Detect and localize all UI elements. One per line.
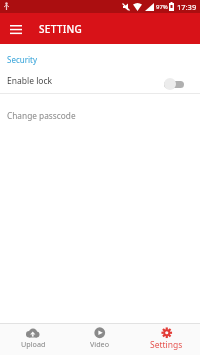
staticText: Upload	[21, 339, 46, 349]
button[interactable]	[0, 13, 31, 44]
staticText: Change passcode	[7, 110, 76, 121]
staticText: 17:39	[177, 2, 197, 12]
button[interactable]	[164, 78, 184, 90]
staticText: Enable lock	[7, 75, 53, 87]
staticText: 97%	[156, 3, 168, 11]
staticText: Settings	[150, 339, 183, 351]
button[interactable]: Settings	[133, 324, 200, 355]
button[interactable]: Video	[66, 324, 133, 355]
staticText: Security	[7, 54, 38, 65]
button[interactable]: Enable lock	[0, 65, 200, 93]
button[interactable]: Change passcode	[0, 94, 200, 137]
staticText: SETTING	[39, 22, 83, 36]
staticText: Video	[90, 339, 109, 349]
button[interactable]: Upload	[0, 324, 66, 355]
